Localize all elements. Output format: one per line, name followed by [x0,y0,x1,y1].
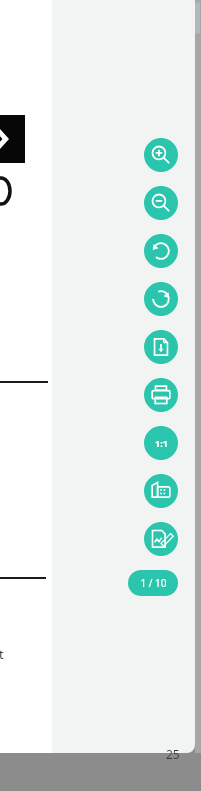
button[interactable]: 1 / 10 [128,570,178,596]
button[interactable]: Zoom in [144,138,178,172]
staticText: t [0,645,4,663]
button[interactable]: Undo [144,234,178,268]
button[interactable]: Sign document [144,522,178,556]
staticText: 1:1 [155,437,168,449]
button[interactable]: Fax [144,474,178,508]
button[interactable]: Redo [144,282,178,316]
button[interactable]: 1:1 [144,426,178,460]
button[interactable]: Download [144,330,178,364]
staticText: 25 [166,746,180,762]
button[interactable]: Print [144,378,178,412]
button[interactable]: Zoom out [144,186,178,220]
staticText: 1 / 10 [140,576,167,590]
